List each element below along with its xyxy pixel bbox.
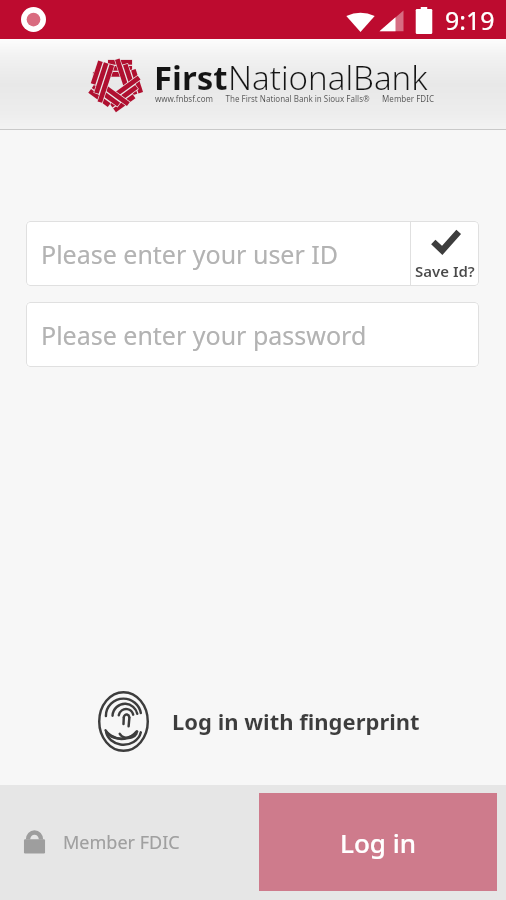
staticText: Member FDIC (63, 830, 180, 855)
staticText: NationalBank (228, 55, 428, 100)
button[interactable]: Log in with fingerprint (0, 686, 506, 756)
staticText: www.fnbsf.com The First National Bank in… (155, 93, 434, 104)
staticText: Log in (340, 825, 416, 860)
button[interactable]: Save Id? (411, 221, 479, 286)
staticText: Please enter your password (41, 318, 367, 352)
staticText: Save Id? (415, 261, 475, 281)
staticText: Please enter your user ID (41, 237, 339, 271)
button[interactable]: Please enter your user ID (26, 221, 410, 286)
staticText: Log in with fingerprint (172, 706, 420, 736)
button[interactable]: Log in (259, 793, 497, 891)
staticText: 9:19 (445, 3, 495, 37)
staticText: First (154, 55, 228, 100)
button[interactable]: Please enter your password (26, 302, 479, 367)
